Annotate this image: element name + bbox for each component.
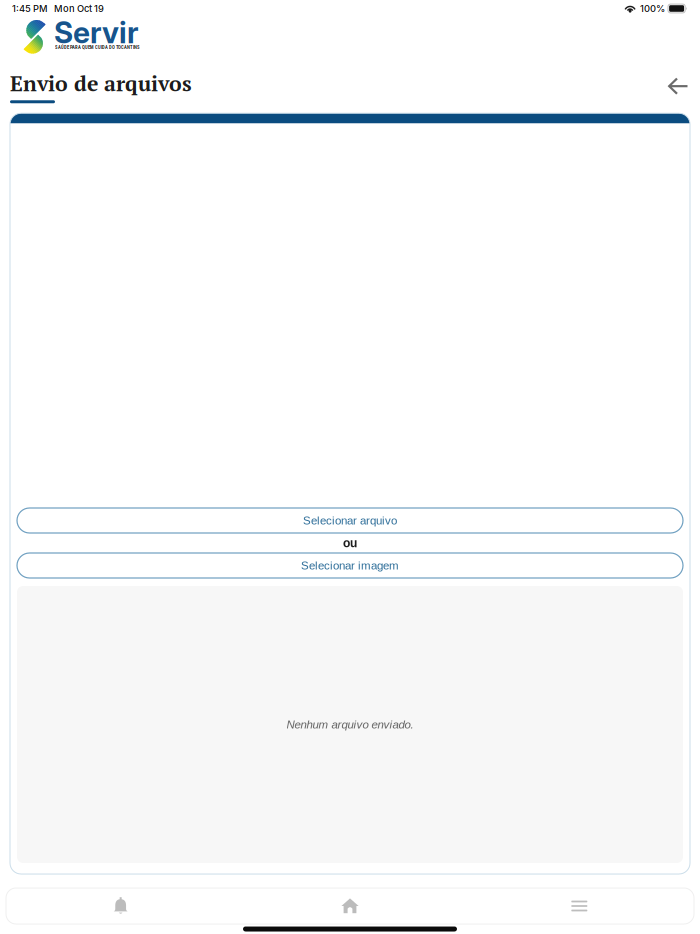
staticText: 1:45 PM xyxy=(12,3,48,14)
staticText: Envio de arquivos xyxy=(10,69,192,97)
staticText: 100% xyxy=(640,3,665,14)
staticText: ou xyxy=(343,536,357,550)
staticText: Servir xyxy=(54,15,139,50)
button[interactable]: Menu xyxy=(465,888,694,924)
button[interactable]: Home xyxy=(235,888,465,924)
staticText: Selecionar imagem xyxy=(301,559,399,572)
button[interactable]: Selecionar imagem xyxy=(17,553,683,578)
staticText: Selecionar arquivo xyxy=(303,514,397,527)
staticText: Nenhum arquivo enviado. xyxy=(286,718,413,731)
staticText: SAÚDE PARA QUEM CUIDA DO TOCANTINS xyxy=(55,45,140,50)
staticText: Mon Oct 19 xyxy=(54,3,104,14)
button[interactable]: Notifications xyxy=(6,888,235,924)
button[interactable]: Back xyxy=(666,74,696,98)
button[interactable]: Selecionar arquivo xyxy=(17,508,683,533)
